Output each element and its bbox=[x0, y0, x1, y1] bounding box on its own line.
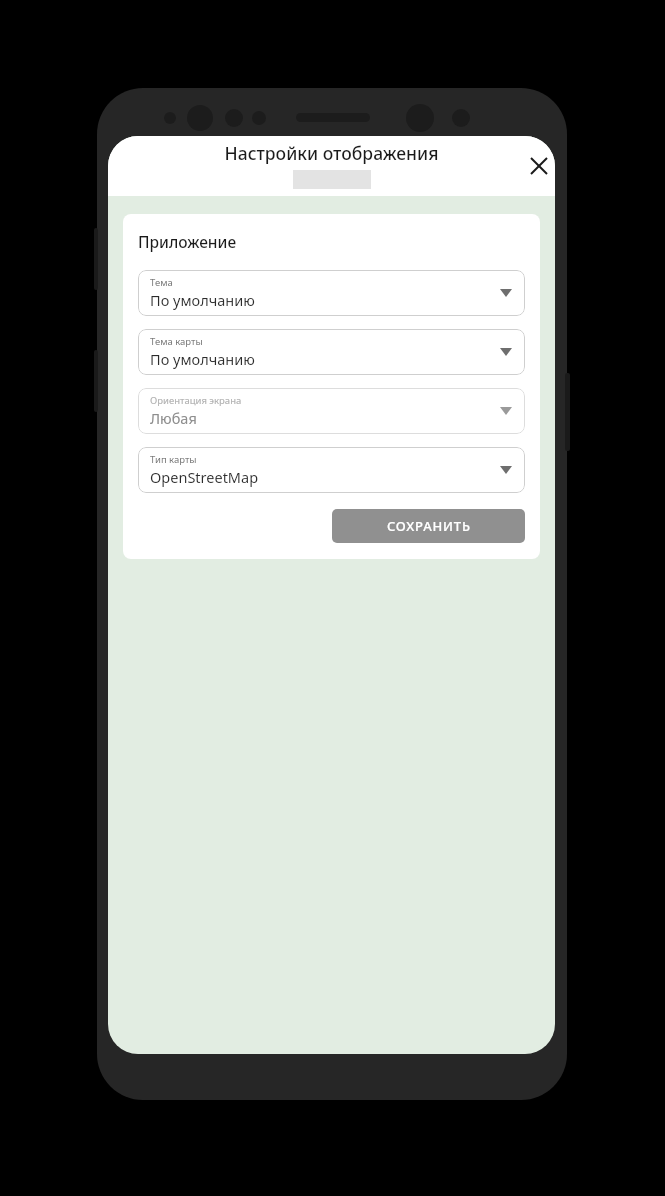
button[interactable]: Close bbox=[515, 142, 555, 190]
staticText: Тема bbox=[150, 276, 173, 289]
staticText: По умолчанию bbox=[150, 349, 255, 369]
staticText: СОХРАНИТЬ bbox=[387, 517, 471, 535]
staticText: По умолчанию bbox=[150, 290, 255, 310]
staticText: OpenStreetMap bbox=[150, 467, 259, 487]
staticText: Ориентация экрана bbox=[150, 394, 242, 407]
button[interactable]: Ориентация экрана bbox=[138, 388, 525, 434]
staticText: Тип карты bbox=[150, 453, 197, 466]
staticText: Тема карты bbox=[150, 335, 203, 348]
staticText: Настройки отображения bbox=[108, 141, 555, 165]
button[interactable]: Тип карты bbox=[138, 447, 525, 493]
staticText: Приложение bbox=[138, 231, 237, 252]
button[interactable]: Тема bbox=[138, 270, 525, 316]
staticText: Любая bbox=[150, 408, 197, 428]
button[interactable]: СОХРАНИТЬ bbox=[332, 509, 525, 543]
button[interactable]: Тема карты bbox=[138, 329, 525, 375]
